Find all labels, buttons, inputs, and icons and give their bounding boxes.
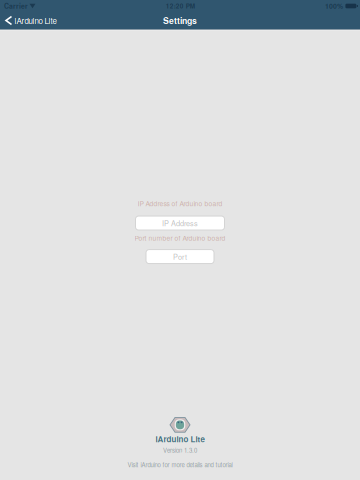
staticText: Version 1.3.0 — [163, 446, 197, 454]
button[interactable]: Visit iArduino for more details and tuto… — [127, 460, 232, 469]
staticText: IP Address — [162, 218, 198, 228]
button[interactable]: iArduino Lite — [0, 12, 61, 29]
button[interactable]: IP Address — [135, 216, 224, 230]
staticText: iArduino Lite — [155, 433, 204, 445]
staticText: iArduino Lite — [14, 15, 56, 26]
button[interactable]: Port — [146, 250, 214, 264]
staticText: Port — [173, 251, 187, 262]
staticText: Port number of Arduino board — [134, 233, 225, 242]
staticText: Settings — [163, 14, 197, 27]
staticText: IP Address of Arduino board — [137, 198, 222, 208]
staticText: Carrier — [4, 1, 28, 11]
staticText: 100% — [325, 1, 343, 11]
staticText: Visit iArduino for more details and tuto… — [127, 460, 232, 469]
staticText: 12:20 PM — [166, 1, 195, 11]
